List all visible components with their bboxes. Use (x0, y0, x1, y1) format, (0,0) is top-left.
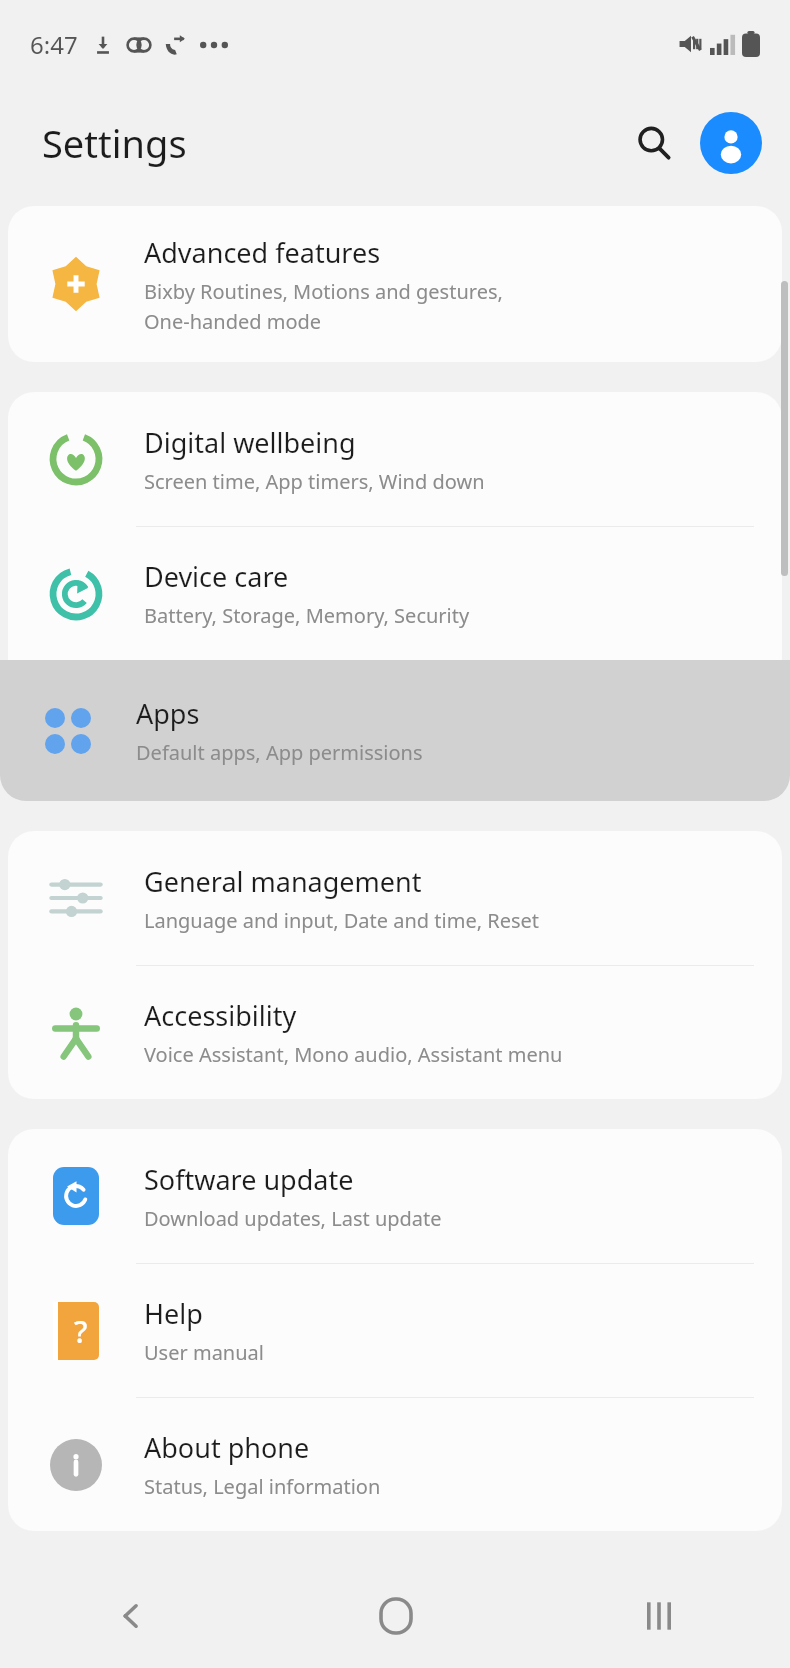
staticText: Language and input, Date and time, Reset (144, 907, 540, 934)
staticText: About phone (144, 1429, 310, 1466)
button[interactable]: Account (700, 112, 762, 174)
staticText: User manual (144, 1339, 264, 1366)
button[interactable]: Digital wellbeing (8, 392, 782, 526)
staticText: General management (144, 863, 422, 900)
button[interactable]: Home (264, 1563, 527, 1668)
staticText: Advanced features (144, 234, 381, 271)
staticText: Apps (136, 695, 200, 732)
staticText: Status, Legal information (144, 1473, 381, 1500)
button[interactable]: About phone (8, 1398, 782, 1531)
button[interactable]: Advanced features (8, 206, 782, 362)
button[interactable]: Back (0, 1563, 264, 1668)
staticText: Bixby Routines, Motions and gestures, On… (144, 278, 503, 335)
staticText: 6:47 (30, 28, 78, 61)
staticText: Settings (42, 117, 187, 169)
button[interactable]: ? (8, 1264, 782, 1397)
staticText: Accessibility (144, 997, 297, 1034)
button[interactable]: Search (622, 111, 686, 175)
staticText: Screen time, App timers, Wind down (144, 468, 485, 495)
staticText: Digital wellbeing (144, 424, 356, 461)
staticText: Help (144, 1295, 203, 1332)
staticText: Voice Assistant, Mono audio, Assistant m… (144, 1041, 563, 1068)
staticText: ? (74, 1311, 88, 1352)
staticText: Battery, Storage, Memory, Security (144, 602, 470, 629)
staticText: Device care (144, 558, 289, 595)
button[interactable]: Recents (527, 1563, 790, 1668)
button[interactable]: Apps (0, 660, 790, 801)
button[interactable]: Software update (8, 1129, 782, 1263)
button[interactable]: General management (8, 831, 782, 965)
staticText: Software update (144, 1161, 354, 1198)
button[interactable]: Device care (8, 527, 782, 660)
staticText: Default apps, App permissions (136, 739, 423, 766)
button[interactable]: Accessibility (8, 966, 782, 1099)
staticText: Download updates, Last update (144, 1205, 442, 1232)
